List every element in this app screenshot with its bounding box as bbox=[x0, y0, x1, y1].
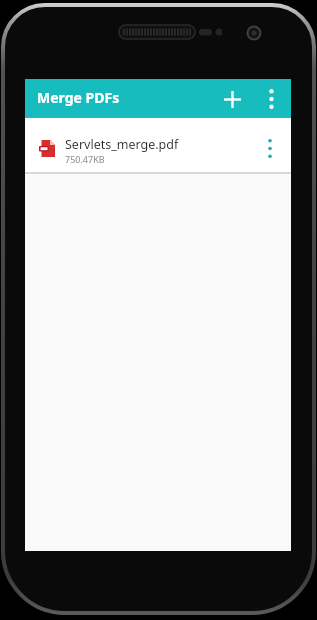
button[interactable] bbox=[249, 124, 291, 166]
staticText: Servlets_merge.pdf bbox=[65, 136, 179, 153]
button[interactable]: Servlets_merge.pdf bbox=[25, 118, 291, 172]
button[interactable] bbox=[215, 82, 249, 116]
button[interactable] bbox=[256, 84, 286, 114]
staticText: Merge PDFs bbox=[37, 88, 120, 107]
staticText: 750.47KB bbox=[65, 153, 105, 165]
